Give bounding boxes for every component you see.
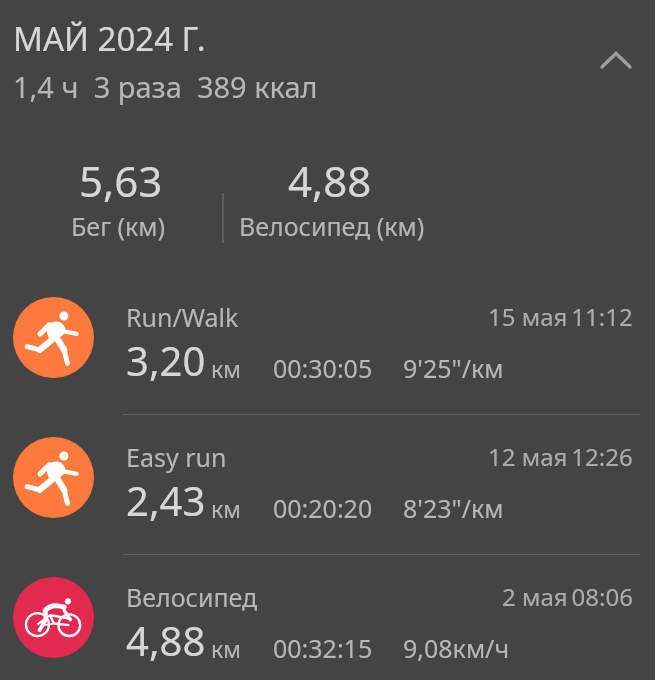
staticText: км — [211, 633, 241, 664]
button[interactable]: Easy run — [0, 426, 655, 553]
button[interactable]: Велосипед — [0, 566, 655, 680]
staticText: км — [211, 493, 241, 524]
staticText: 00:30:05 — [273, 351, 373, 385]
staticText: 3,20 — [126, 333, 206, 387]
staticText: Easy run — [126, 440, 227, 474]
staticText: Велосипед — [126, 580, 258, 614]
staticText: 5,63 — [79, 152, 163, 209]
staticText: 2,43 — [126, 473, 206, 527]
staticText: 00:20:20 — [273, 491, 373, 525]
staticText: Run/Walk — [126, 300, 239, 334]
staticText: 2 мая 08:06 — [502, 580, 633, 613]
staticText: 4,88 — [126, 613, 206, 667]
staticText: МАЙ 2024 Г. — [13, 16, 206, 61]
staticText: 12 мая 12:26 — [488, 440, 633, 473]
staticText: 9,08км/ч — [403, 631, 510, 665]
staticText: 4,88 — [288, 152, 372, 209]
staticText: 00:32:15 — [273, 631, 373, 665]
staticText: Велосипед (км) — [239, 209, 425, 243]
staticText: Бег (км) — [71, 209, 166, 243]
button[interactable]: МАЙ 2024 Г. — [0, 0, 655, 125]
button[interactable]: Свернуть — [588, 32, 644, 88]
staticText: 8'23"/км — [403, 491, 504, 525]
staticText: км — [211, 353, 241, 384]
button[interactable]: Run/Walk — [0, 286, 655, 413]
staticText: 1,4 ч 3 раза 389 ккал — [13, 67, 318, 106]
staticText: 9'25"/км — [403, 351, 504, 385]
staticText: 15 мая 11:12 — [488, 300, 633, 333]
